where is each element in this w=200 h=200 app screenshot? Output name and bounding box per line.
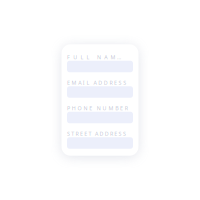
staticText: PHONE NUMBER [67,105,128,112]
button[interactable]: FULL NAME [67,57,133,72]
button[interactable]: EMAIL ADDRESS [67,82,133,98]
staticText: STREET ADDRESS [67,130,126,137]
staticText: EMAIL ADDRESS [67,79,126,86]
button[interactable]: STREET ADDRESS [67,133,133,149]
staticText: FULL NAME [67,54,122,61]
button[interactable]: PHONE NUMBER [67,108,133,123]
